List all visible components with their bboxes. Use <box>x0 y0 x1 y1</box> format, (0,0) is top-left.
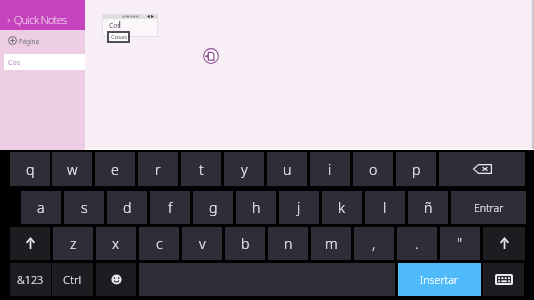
staticText: o <box>369 160 378 179</box>
button[interactable]: j <box>279 191 319 224</box>
staticText: Insertar <box>420 273 459 287</box>
staticText: y <box>241 160 248 179</box>
staticText: Cosas <box>111 33 127 41</box>
button[interactable]: o <box>353 152 393 186</box>
button[interactable]: p <box>396 152 436 186</box>
button[interactable]: q <box>10 152 50 186</box>
staticText: p <box>412 160 421 179</box>
staticText: t <box>199 160 204 179</box>
staticText: l <box>383 198 387 217</box>
button[interactable]: b <box>225 227 265 260</box>
button[interactable]: Insertar <box>398 263 481 296</box>
button[interactable]: , <box>354 227 394 260</box>
staticText: f <box>168 198 173 217</box>
staticText: q <box>26 160 35 179</box>
staticText: r <box>155 160 161 179</box>
staticText: i <box>328 160 332 179</box>
staticText: . <box>415 234 419 253</box>
button[interactable]: m <box>311 227 351 260</box>
button[interactable]: i <box>310 152 350 186</box>
button[interactable]: u <box>267 152 307 186</box>
button[interactable]: w <box>52 152 92 186</box>
staticText: ñ <box>424 198 433 217</box>
button[interactable]: f <box>150 191 190 224</box>
staticText: s <box>81 198 88 217</box>
button[interactable]: Quick Notes <box>0 0 85 30</box>
staticText: h <box>252 198 261 217</box>
staticText: Quick Notes <box>14 12 67 27</box>
button[interactable]: Shift <box>10 227 50 260</box>
button[interactable]: d <box>107 191 147 224</box>
button[interactable]: l <box>365 191 405 224</box>
button[interactable]: Shift <box>483 227 525 260</box>
button[interactable]: a <box>21 191 61 224</box>
staticText: e <box>111 160 119 179</box>
button[interactable]: Backspace <box>439 152 525 186</box>
staticText: , <box>372 234 376 253</box>
button[interactable]: &123 <box>10 263 51 296</box>
staticText: g <box>209 198 218 217</box>
staticText: Entrar <box>474 201 504 215</box>
button[interactable]: x <box>96 227 136 260</box>
button[interactable]: Hide keyboard <box>483 263 524 296</box>
staticText: z <box>70 234 77 253</box>
staticText: a <box>37 198 45 217</box>
button[interactable]: r <box>138 152 178 186</box>
button[interactable]: z <box>53 227 93 260</box>
button[interactable]: ñ <box>408 191 448 224</box>
staticText: c <box>156 234 163 253</box>
staticText: Página <box>19 37 39 45</box>
staticText: n <box>284 234 293 253</box>
button[interactable]: h <box>236 191 276 224</box>
button[interactable]: s <box>64 191 104 224</box>
staticText: x <box>112 234 120 253</box>
button[interactable]: . <box>397 227 437 260</box>
staticText: j <box>297 198 301 217</box>
button[interactable]: Emoji <box>96 263 136 296</box>
button[interactable]: Entrar <box>451 191 526 224</box>
staticText: Cos <box>8 58 21 68</box>
button[interactable]: Cos <box>4 54 85 70</box>
staticText: &123 <box>17 272 44 287</box>
button[interactable]: t <box>181 152 221 186</box>
button[interactable]: Página <box>0 33 85 47</box>
staticText: b <box>241 234 250 253</box>
staticText: d <box>123 198 132 217</box>
button[interactable]: e <box>95 152 135 186</box>
button[interactable]: g <box>193 191 233 224</box>
button[interactable]: v <box>182 227 222 260</box>
staticText: Cos <box>109 21 121 30</box>
staticText: v <box>199 234 206 253</box>
button[interactable]: Insert page <box>202 47 220 65</box>
button[interactable]: Cosas <box>107 31 130 43</box>
button[interactable]: k <box>322 191 362 224</box>
button[interactable]: Ctrl <box>52 263 93 296</box>
staticText: w <box>67 160 78 179</box>
staticText: m <box>325 234 338 253</box>
staticText: Ctrl <box>63 272 82 288</box>
staticText: u <box>283 160 292 179</box>
button[interactable]: " <box>440 227 480 260</box>
button[interactable]: c <box>139 227 179 260</box>
button[interactable]: y <box>224 152 264 186</box>
staticText: k <box>338 198 346 217</box>
button[interactable]: n <box>268 227 308 260</box>
staticText: " <box>457 234 463 253</box>
